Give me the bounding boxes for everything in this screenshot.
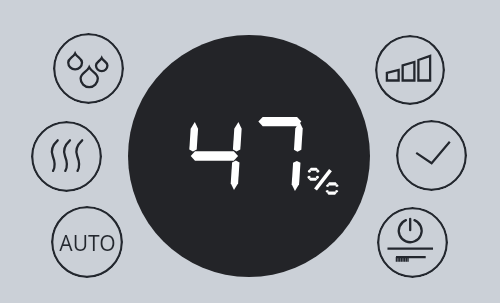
button[interactable]: Power and filter <box>377 207 448 278</box>
button[interactable]: Fan speed <box>375 35 445 105</box>
button[interactable]: Warm mist <box>31 121 102 192</box>
button[interactable]: Humidity level <box>53 33 124 104</box>
button[interactable]: Confirm <box>396 120 467 191</box>
button[interactable] <box>51 206 123 278</box>
button[interactable]: Humidity 47 percent <box>128 35 370 277</box>
